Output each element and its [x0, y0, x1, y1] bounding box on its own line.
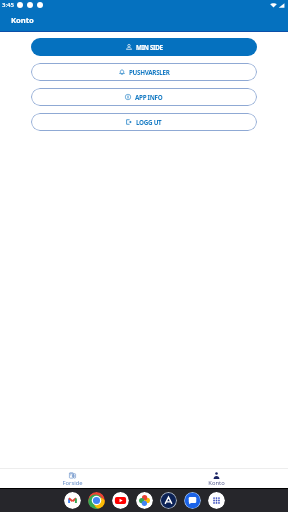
button[interactable]: Photos [136, 492, 153, 509]
button[interactable]: YouTube [112, 492, 129, 509]
button[interactable]: Konto [144, 469, 288, 487]
staticText: LOGG UT [136, 118, 162, 127]
button[interactable]: Chrome [88, 492, 105, 509]
staticText: PUSHVARSLER [129, 68, 170, 77]
button[interactable]: Assistant [160, 492, 177, 509]
staticText: MIN SIDE [136, 43, 163, 52]
button[interactable]: MIN SIDE [31, 38, 257, 56]
staticText: Konto [208, 479, 225, 487]
button[interactable]: Forside [0, 469, 144, 487]
button[interactable]: APP INFO [31, 88, 257, 106]
button[interactable]: All apps [208, 492, 225, 509]
staticText: Forside [62, 479, 83, 487]
button[interactable]: Gmail [64, 492, 81, 509]
button[interactable]: LOGG UT [31, 113, 257, 131]
staticText: APP INFO [135, 93, 163, 102]
button[interactable]: PUSHVARSLER [31, 63, 257, 81]
button[interactable]: Messages [184, 492, 201, 509]
staticText: 3:45 [2, 1, 14, 9]
staticText: Konto [11, 15, 34, 25]
